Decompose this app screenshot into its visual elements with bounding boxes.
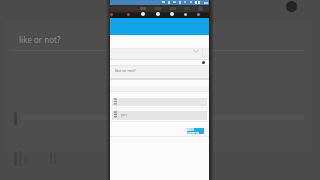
button[interactable]: Account xyxy=(286,1,297,12)
staticText: ADD OPTION xyxy=(187,128,204,134)
button[interactable]: More options xyxy=(202,61,205,64)
staticText: yes xyxy=(121,112,128,117)
staticText: like or not? xyxy=(115,68,136,73)
staticText: like or not? xyxy=(19,34,61,45)
button[interactable]: ADD OPTION xyxy=(187,128,204,134)
